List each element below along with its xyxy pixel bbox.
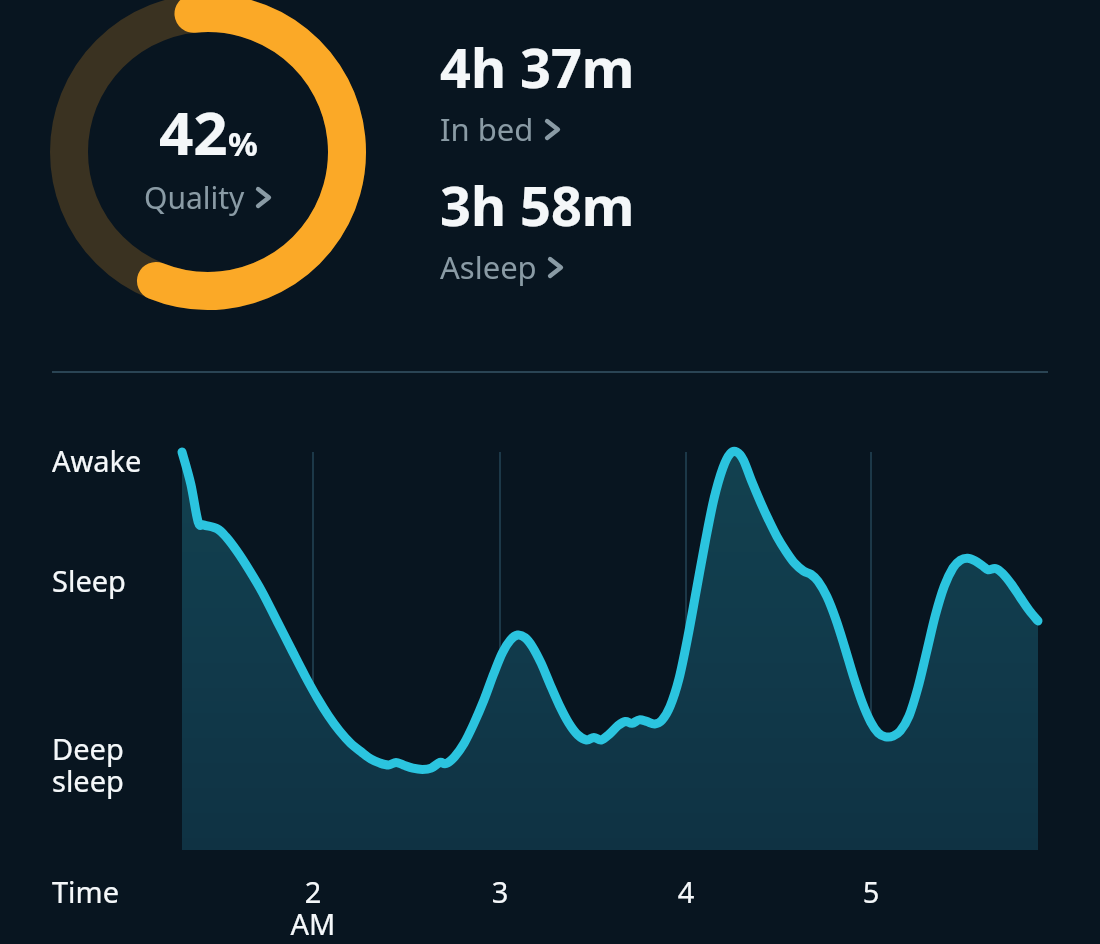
staticText: sleep	[52, 761, 124, 800]
staticText: In bed	[440, 108, 534, 150]
staticText: 4h 37m	[440, 30, 635, 104]
button[interactable]: 3h 58m	[440, 168, 635, 284]
staticText: Time	[52, 872, 120, 911]
staticText: %	[228, 121, 258, 166]
staticText: 3	[460, 872, 540, 944]
staticText: Deep	[52, 729, 124, 768]
button[interactable]: 42	[50, 0, 366, 310]
staticText: 42	[159, 91, 228, 173]
staticText: 4	[646, 872, 726, 944]
staticText: AM	[273, 904, 353, 944]
staticText: 3h 58m	[440, 168, 635, 242]
staticText: Quality	[144, 177, 245, 218]
staticText: Sleep	[52, 561, 126, 600]
staticText: Asleep	[440, 246, 537, 288]
button[interactable]: 4h 37m	[440, 30, 635, 146]
staticText: 2	[273, 872, 353, 944]
staticText: 5	[831, 872, 911, 944]
staticText: Awake	[52, 441, 142, 480]
